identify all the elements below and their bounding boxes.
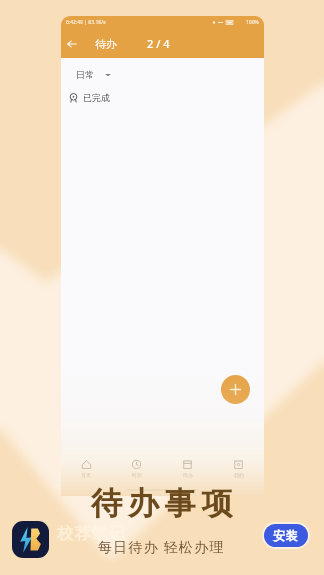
staticText: 校荐笔记: [57, 524, 125, 544]
button[interactable]: 首页: [61, 459, 111, 478]
button[interactable]: 已完成: [68, 92, 110, 103]
staticText: 安装: [273, 528, 299, 543]
staticText: 待办事项: [91, 484, 239, 523]
staticText: 时刻: [132, 472, 142, 478]
staticText: 待办: [183, 472, 193, 478]
button[interactable]: 日常: [76, 69, 111, 80]
button[interactable]: Add: [221, 375, 250, 404]
staticText: 6:42:49 | 83.1K/s: [66, 19, 106, 26]
staticText: 已完成: [83, 92, 110, 103]
button[interactable]: App icon: [12, 521, 49, 558]
button[interactable]: Back: [61, 31, 83, 56]
staticText: 100%: [246, 19, 259, 26]
button[interactable]: 安装: [264, 524, 308, 547]
staticText: 每日待办 轻松办理: [98, 537, 225, 556]
button[interactable]: 我的: [213, 459, 264, 478]
staticText: 2 / 4: [147, 36, 170, 51]
staticText: 待办: [95, 37, 117, 51]
button[interactable]: 待办: [162, 459, 213, 478]
button[interactable]: 时刻: [111, 459, 162, 478]
staticText: 首页: [81, 472, 91, 478]
staticText: 日常: [76, 69, 94, 80]
staticText: 我的: [234, 472, 244, 478]
